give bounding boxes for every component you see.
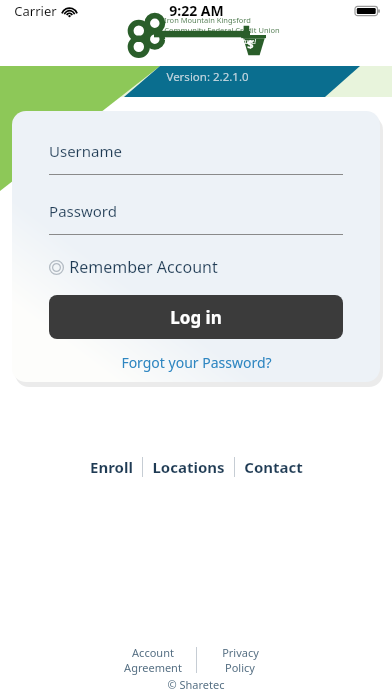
button[interactable]: Contact	[235, 454, 312, 480]
staticText: Community Federal Credit Union	[164, 25, 280, 35]
staticText: Locations	[152, 457, 225, 477]
staticText: Log in	[170, 306, 222, 329]
staticText: Password	[49, 201, 117, 221]
staticText: Enroll	[90, 457, 133, 477]
staticText: Carrier	[14, 2, 57, 20]
staticText: Contact	[244, 457, 303, 477]
staticText: Account	[132, 645, 174, 660]
staticText: © Sharetec	[167, 677, 225, 692]
button[interactable]: Remember Account	[49, 256, 218, 278]
button[interactable]: Privacy	[197, 645, 283, 675]
staticText: $	[247, 36, 254, 51]
staticText: Version: 2.2.1.0	[166, 69, 249, 85]
button[interactable]: Account	[110, 645, 196, 675]
staticText: Remember Account	[69, 256, 218, 278]
staticText: The KEY to your financial future!	[164, 37, 256, 46]
staticText: 9:22 AM	[169, 1, 224, 20]
staticText: Username	[49, 141, 122, 161]
button[interactable]: Forgot your Password?	[49, 353, 343, 372]
staticText: Policy	[225, 660, 255, 675]
button[interactable]: Log in	[49, 295, 343, 339]
staticText: Forgot your Password?	[121, 353, 272, 372]
button[interactable]: Enroll	[81, 454, 142, 480]
button[interactable]: Locations	[143, 454, 234, 480]
staticText: Privacy	[222, 645, 259, 660]
staticText: Iron Mountain Kingsford	[164, 15, 251, 25]
staticText: Agreement	[124, 660, 182, 675]
